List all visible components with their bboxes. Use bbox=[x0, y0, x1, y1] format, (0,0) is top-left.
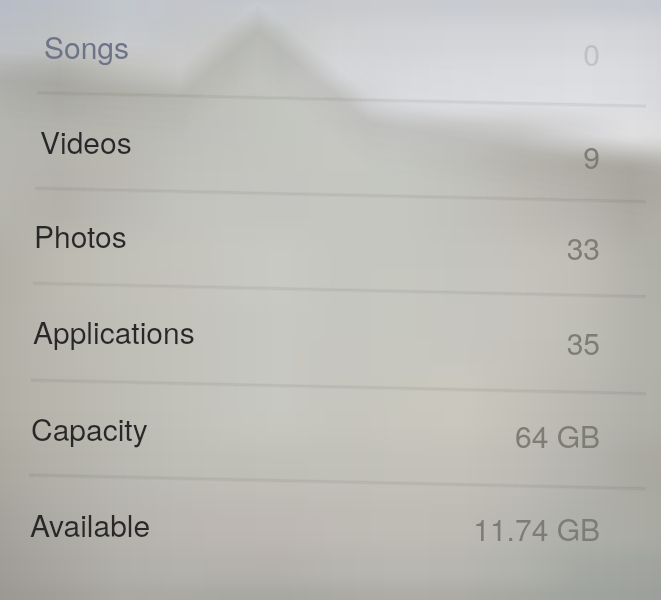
staticText: Available bbox=[30, 503, 151, 546]
staticText: 64 GB bbox=[514, 414, 600, 457]
button[interactable]: Songs bbox=[0, 5, 661, 101]
button[interactable]: Available bbox=[0, 483, 661, 579]
staticText: 35 bbox=[566, 321, 600, 364]
staticText: 9 bbox=[583, 135, 600, 178]
staticText: 0 bbox=[583, 32, 600, 75]
button[interactable]: Videos bbox=[0, 100, 661, 196]
staticText: Applications bbox=[33, 310, 195, 353]
button[interactable]: Photos bbox=[0, 194, 661, 290]
staticText: Capacity bbox=[31, 407, 148, 450]
button[interactable]: Capacity bbox=[0, 387, 661, 483]
staticText: Songs bbox=[44, 25, 130, 68]
staticText: Photos bbox=[34, 214, 127, 257]
staticText: Videos bbox=[40, 120, 132, 163]
staticText: 33 bbox=[566, 226, 600, 269]
staticText: 11.74 GB bbox=[473, 507, 600, 550]
button[interactable]: Applications bbox=[0, 290, 661, 386]
